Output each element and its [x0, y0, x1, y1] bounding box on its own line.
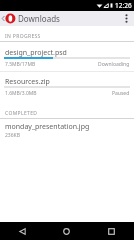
button[interactable]: More options [118, 11, 134, 26]
staticText: 12:26 [115, 1, 132, 10]
staticText: design_project.psd [5, 48, 67, 58]
button[interactable]: Recent apps [89, 222, 134, 240]
button: COMPLETED [5, 110, 38, 117]
staticText: IN PROGRESS [5, 33, 41, 40]
staticText: Downloads [18, 13, 60, 24]
staticText: monday_presentation.jpg [5, 122, 90, 132]
staticText: 1.6MB/3.0MB [5, 90, 37, 97]
button[interactable]: Navigate up [0, 11, 17, 26]
button[interactable]: Home [44, 222, 89, 240]
button: IN PROGRESS [5, 33, 41, 40]
staticText: Paused [112, 90, 130, 97]
staticText: Downloading [98, 61, 130, 68]
button[interactable]: design_project.psd [0, 42, 134, 71]
button[interactable]: Back [0, 222, 44, 240]
staticText: 7.5MB/17MB [5, 61, 36, 68]
button[interactable]: Resources.zip [0, 72, 134, 101]
staticText: Resources.zip [5, 77, 50, 87]
button[interactable]: monday_presentation.jpg [0, 119, 134, 141]
staticText: COMPLETED [5, 110, 38, 117]
staticText: 236KB [5, 132, 20, 139]
